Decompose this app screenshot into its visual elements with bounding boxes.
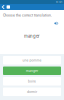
staticText: 9:41 xyxy=(56,0,62,4)
button[interactable]: boire xyxy=(3,77,61,85)
staticText: Choose the correct translation. xyxy=(3,13,52,17)
button[interactable]: une pomme xyxy=(3,56,61,64)
button[interactable]: App xyxy=(7,5,10,9)
button[interactable]: Play audio xyxy=(54,21,59,26)
button[interactable]: Back xyxy=(2,5,5,9)
staticText: manger xyxy=(24,34,40,39)
button[interactable]: manger xyxy=(3,66,61,75)
staticText: boire xyxy=(28,79,36,83)
staticText: manger xyxy=(26,69,38,73)
staticText: dormir xyxy=(27,90,37,94)
button[interactable]: dormir xyxy=(3,87,61,96)
staticText: une pomme xyxy=(22,58,41,62)
